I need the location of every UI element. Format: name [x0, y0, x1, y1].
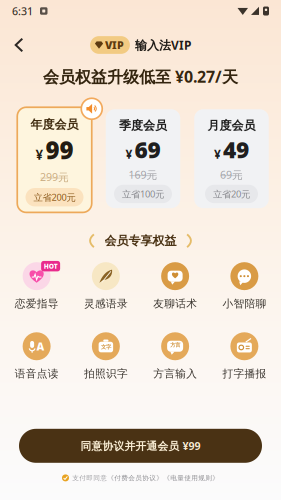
- staticText: 立省200元: [33, 191, 75, 203]
- button[interactable]: 小智陪聊: [210, 262, 279, 310]
- staticText: 169元: [128, 168, 157, 182]
- staticText: 方言: [170, 342, 180, 348]
- button[interactable]: 文字: [71, 332, 140, 380]
- button[interactable]: 灵感语录: [71, 262, 140, 310]
- staticText: 年度会员: [30, 117, 78, 132]
- staticText: 会员专享权益: [104, 233, 176, 248]
- button[interactable]: 季度会员: [106, 107, 180, 206]
- button[interactable]: 友聊话术: [140, 262, 210, 310]
- staticText: 6:31: [12, 4, 33, 18]
- button[interactable]: 月度会员: [194, 107, 269, 206]
- staticText: 99: [45, 134, 73, 166]
- staticText: 语音点读: [15, 367, 59, 380]
- button[interactable]: 年度会员: [17, 107, 92, 212]
- staticText: ¥: [35, 146, 43, 163]
- staticText: VIP: [105, 38, 124, 52]
- staticText: 同意协议并开通会员 ¥99: [80, 439, 200, 453]
- staticText: 《付费会员协议》《电量使用规则》: [107, 474, 219, 482]
- staticText: 49: [223, 134, 249, 165]
- staticText: 方言输入: [153, 367, 197, 380]
- staticText: ¥: [125, 146, 132, 162]
- staticText: ¥: [214, 146, 221, 162]
- staticText: 友聊话术: [153, 297, 197, 310]
- staticText: A: [36, 339, 44, 353]
- staticText: 69: [134, 134, 160, 165]
- staticText: 小智陪聊: [222, 297, 266, 310]
- button[interactable]: 返回: [4, 30, 34, 60]
- staticText: 打字播报: [222, 367, 266, 380]
- staticText: 季度会员: [119, 118, 167, 133]
- staticText: 月度会员: [207, 118, 255, 133]
- button[interactable]: 同意协议并开通会员 ¥99: [19, 429, 262, 463]
- staticText: 立省100元: [122, 188, 164, 200]
- staticText: HOT: [44, 262, 58, 271]
- staticText: 会员权益升级低至 ¥0.27/天: [43, 66, 238, 87]
- button[interactable]: 方言: [140, 332, 210, 380]
- staticText: 拍照识字: [84, 367, 128, 380]
- staticText: 支付即同意: [72, 474, 107, 482]
- staticText: 立省20元: [213, 188, 250, 200]
- button[interactable]: A: [2, 332, 71, 380]
- staticText: 输入法VIP: [135, 37, 191, 53]
- staticText: 恋爱指导: [15, 297, 59, 310]
- button[interactable]: HOT: [2, 262, 71, 310]
- staticText: 69元: [220, 168, 243, 182]
- button[interactable]: 打字播报: [210, 332, 279, 380]
- staticText: 299元: [40, 170, 69, 184]
- staticText: 文字: [101, 344, 111, 350]
- staticText: 灵感语录: [84, 297, 128, 310]
